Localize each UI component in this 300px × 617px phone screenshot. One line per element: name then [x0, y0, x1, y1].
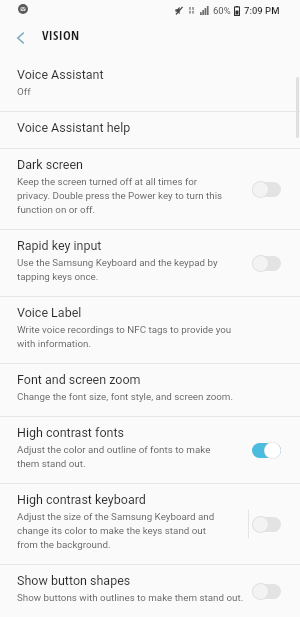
staticText: Use the Samsung Keyboard and the keypad …	[17, 255, 218, 283]
staticText: Voice Assistant help	[17, 120, 131, 135]
staticText: Dark screen	[17, 157, 83, 172]
button[interactable]: Show button shapes	[0, 565, 300, 617]
staticText: Change the font size, font style, and sc…	[17, 389, 234, 403]
button[interactable]: Switch off	[252, 516, 281, 533]
staticText: Voice Assistant	[17, 67, 104, 82]
button[interactable]: Switch off	[252, 181, 281, 198]
staticText: Adjust the size of the Samsung Keyboard …	[17, 509, 215, 551]
button[interactable]: Back	[5, 23, 35, 53]
button[interactable]: Switch off	[252, 255, 281, 272]
staticText: High contrast fonts	[17, 425, 124, 440]
staticText: Font and screen zoom	[17, 372, 141, 387]
staticText: 60%	[213, 5, 231, 16]
button[interactable]: Switch on	[252, 442, 281, 459]
button[interactable]: High contrast fonts	[0, 417, 300, 483]
staticText: High contrast keyboard	[17, 492, 146, 507]
staticText: Show buttons with outlines to make them …	[17, 590, 244, 604]
staticText: Keep the screen turned off at all times …	[17, 174, 223, 216]
staticText: Rapid key input	[17, 238, 102, 253]
button[interactable]: Font and screen zoom	[0, 364, 300, 416]
staticText: Adjust the color and outline of fonts to…	[17, 442, 211, 470]
button[interactable]: Rapid key input	[0, 230, 300, 296]
button[interactable]: Switch off	[252, 583, 281, 600]
button[interactable]: Voice Label	[0, 297, 300, 363]
staticText: Write voice recordings to NFC tags to pr…	[17, 322, 232, 350]
button[interactable]: Dark screen	[0, 149, 300, 229]
button[interactable]: Voice Assistant	[0, 59, 300, 111]
staticText: Voice Label	[17, 305, 82, 320]
staticText: Off	[17, 84, 31, 98]
staticText: 7:09 PM	[244, 5, 280, 16]
button[interactable]: High contrast keyboard	[0, 484, 300, 564]
staticText: VISION	[42, 26, 80, 44]
staticText: Show button shapes	[17, 573, 131, 588]
button[interactable]: Voice Assistant help	[0, 112, 300, 148]
